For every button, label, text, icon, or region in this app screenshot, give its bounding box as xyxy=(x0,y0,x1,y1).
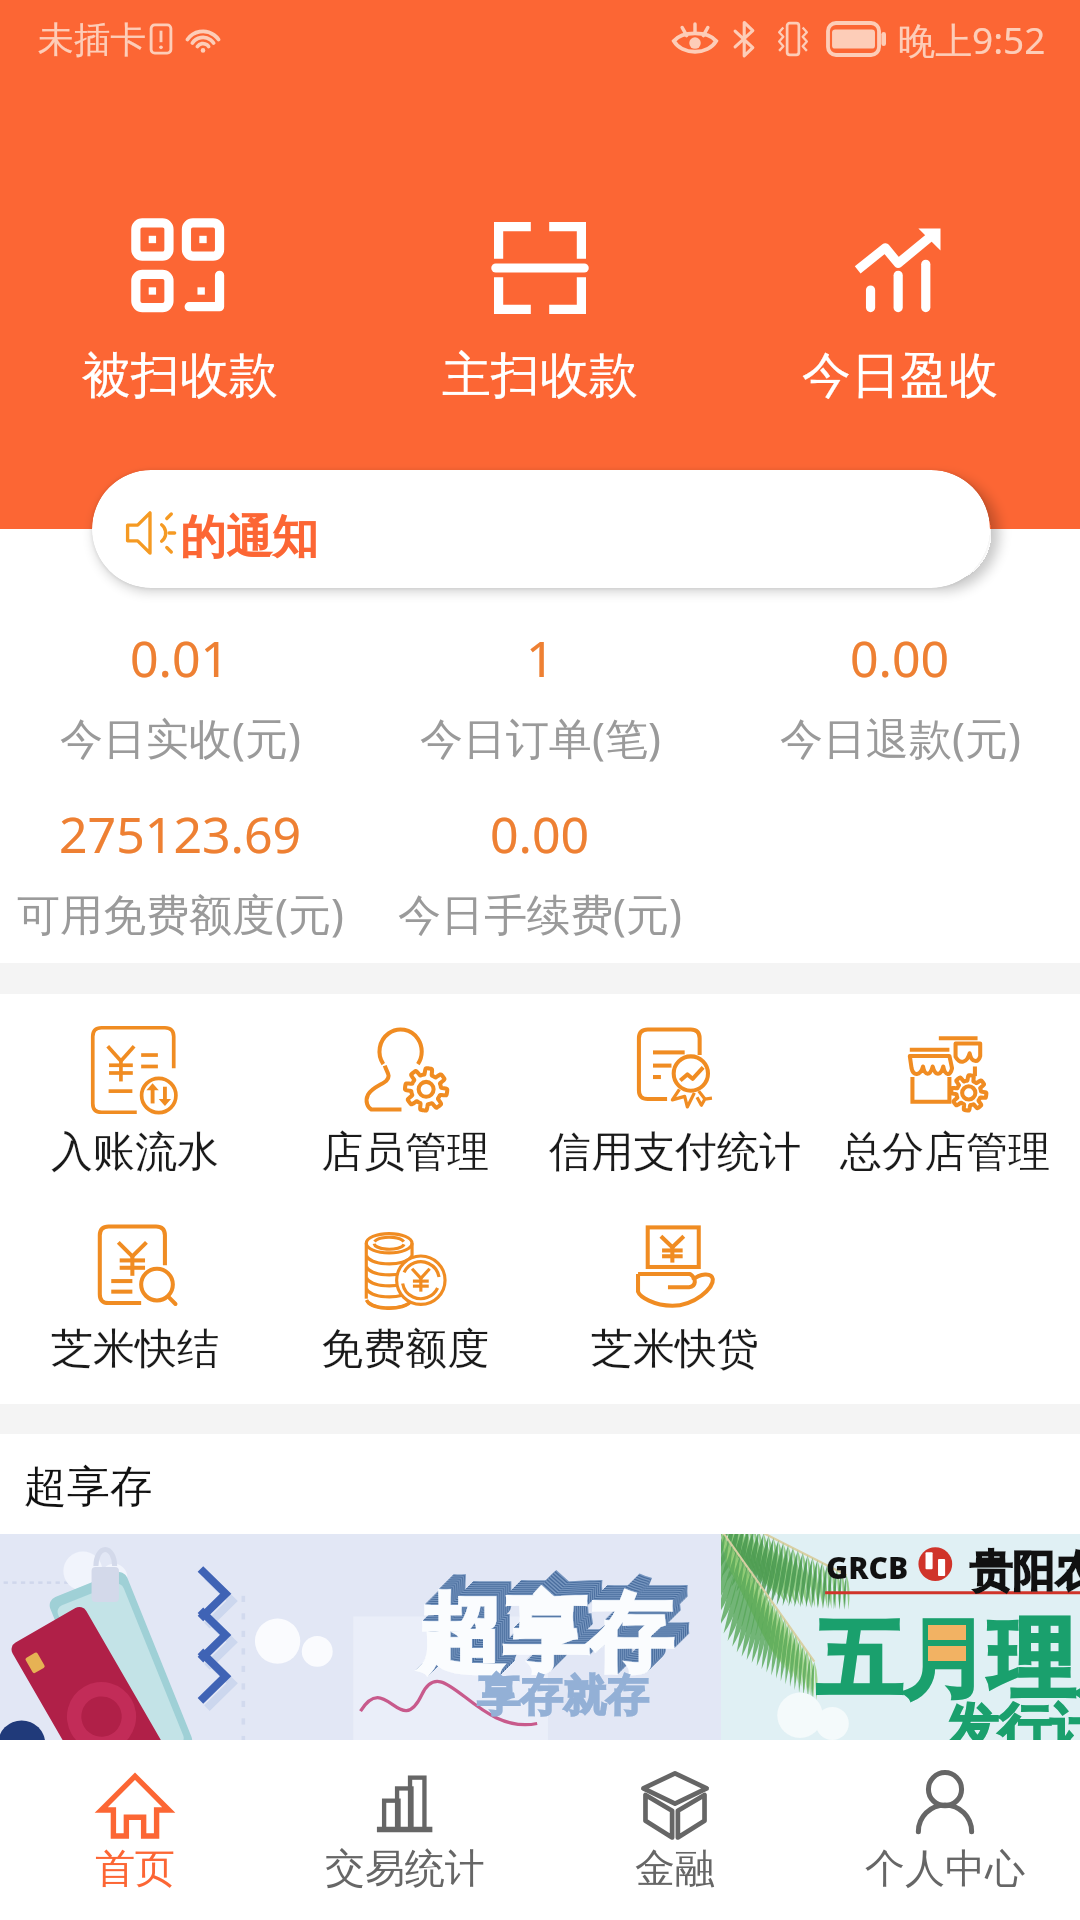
button[interactable]: 芝米快贷 xyxy=(540,1223,810,1383)
button[interactable]: 超享存 xyxy=(0,1534,721,1740)
staticText: 超享存 xyxy=(423,1576,678,1683)
button[interactable]: 店员管理 xyxy=(270,1026,540,1186)
button[interactable]: 1 xyxy=(360,624,720,769)
button[interactable]: 个人中心 xyxy=(810,1740,1080,1920)
staticText: 发行计划 xyxy=(946,1696,1080,1740)
staticText: 超享存 xyxy=(429,1570,684,1677)
button[interactable]: 0.00 xyxy=(720,624,1080,769)
staticText: 芝米快贷 xyxy=(591,1323,759,1376)
button[interactable]: 主扫收款 xyxy=(405,200,675,420)
button[interactable]: 入账流水 xyxy=(0,1026,270,1186)
button[interactable]: 交易统计 xyxy=(270,1740,540,1920)
button[interactable]: GRCB xyxy=(721,1534,1080,1740)
staticText: 今日盈收 xyxy=(802,345,998,407)
button[interactable]: 275123.69 xyxy=(0,800,360,945)
staticText: 店员管理 xyxy=(321,1126,489,1179)
staticText: 超享存 xyxy=(430,1569,685,1676)
button[interactable]: 总分店管理 xyxy=(810,1026,1080,1186)
staticText: 超享存 xyxy=(433,1566,688,1673)
staticText: 芝米快结 xyxy=(51,1323,219,1376)
staticText: 超享存 xyxy=(422,1577,677,1684)
staticText: 275123.69 xyxy=(59,800,302,868)
staticText: 晚上9:52 xyxy=(898,14,1046,65)
staticText: 总分店管理 xyxy=(840,1126,1050,1179)
button[interactable]: 0.00 xyxy=(360,800,720,945)
staticText: 主扫收款 xyxy=(442,345,638,407)
staticText: 超享存 xyxy=(420,1579,675,1686)
staticText: 未插卡 xyxy=(38,17,146,62)
button[interactable]: 今日盈收 xyxy=(765,200,1035,420)
staticText: 1 xyxy=(526,624,555,692)
staticText: 超享存 xyxy=(425,1574,680,1681)
staticText: 首页 xyxy=(95,1843,175,1893)
staticText: 个人中心 xyxy=(865,1843,1025,1893)
staticText: 五月理财 xyxy=(816,1606,1080,1714)
staticText: 超享存 xyxy=(426,1573,681,1680)
staticText: 信用支付统计 xyxy=(549,1126,801,1179)
staticText: 超享存 xyxy=(427,1572,682,1679)
button[interactable]: 金融 xyxy=(540,1740,810,1920)
staticText: 可用免费额度(元) xyxy=(17,884,344,943)
staticText: 贵阳农商 xyxy=(969,1545,1080,1599)
button[interactable]: 芝米快结 xyxy=(0,1223,270,1383)
button[interactable]: 0.01 xyxy=(0,624,360,769)
staticText: 入账流水 xyxy=(51,1126,219,1179)
staticText: 交易统计 xyxy=(325,1843,485,1893)
staticText: 0.00 xyxy=(850,624,950,692)
staticText: 超享存 xyxy=(418,1581,673,1688)
button[interactable]: 首页 xyxy=(0,1740,270,1920)
staticText: 超享存 xyxy=(421,1578,676,1685)
staticText: 超享存 xyxy=(432,1567,687,1674)
staticText: 享存就存 xyxy=(477,1669,649,1723)
button[interactable]: 被扫收款 xyxy=(45,200,315,420)
button[interactable]: 信用支付统计 xyxy=(540,1026,810,1186)
staticText: 今日订单(笔) xyxy=(420,708,661,767)
staticText: 金融 xyxy=(635,1843,715,1893)
staticText: 超享存 xyxy=(419,1580,674,1687)
staticText: 今日手续费(元) xyxy=(398,884,682,943)
staticText: 0.01 xyxy=(130,624,230,692)
staticText: 超享存 xyxy=(24,1460,153,1514)
staticText: 超享存 xyxy=(428,1571,683,1678)
staticText: 被扫收款 xyxy=(82,345,278,407)
staticText: 今日实收(元) xyxy=(60,708,301,767)
button[interactable]: 的通知 xyxy=(92,470,990,588)
staticText: 超享存 xyxy=(424,1575,679,1682)
staticText: 免费额度 xyxy=(321,1323,489,1376)
staticText: 的通知 xyxy=(180,509,318,567)
staticText: 今日退款(元) xyxy=(780,708,1021,767)
staticText: 超享存 xyxy=(431,1568,686,1675)
staticText: 0.00 xyxy=(490,800,590,868)
button[interactable]: 免费额度 xyxy=(270,1223,540,1383)
staticText: GRCB xyxy=(826,1547,909,1588)
